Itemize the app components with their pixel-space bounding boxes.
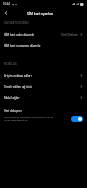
button[interactable]: SİM kart numarası düzenle bbox=[0, 40, 87, 51]
button[interactable]: Veri dolaşımı bbox=[71, 116, 83, 122]
staticText: SİM kart ayarları bbox=[27, 11, 54, 15]
staticText: Mobil ağlar bbox=[4, 96, 20, 100]
staticText: Erişim noktası adları bbox=[4, 74, 32, 78]
staticText: MOBİL AĞ bbox=[4, 62, 17, 66]
button[interactable]: SİM kart adını düzenle bbox=[0, 29, 87, 40]
button[interactable]: Erişim noktası adları bbox=[0, 70, 87, 81]
button[interactable]: Veri dolaşımı bbox=[0, 103, 87, 126]
staticText: SİM kart adını düzenle bbox=[4, 33, 35, 37]
button[interactable]: Tercih edilen ağ türü bbox=[0, 81, 87, 92]
staticText: SİM KARTI DÜZENLE bbox=[4, 21, 30, 25]
staticText: 10:44 bbox=[3, 2, 10, 6]
staticText: Veri dolaşımı hizmetine bağlanmak için e… bbox=[4, 115, 59, 122]
staticText: SİM kart numarası düzenle bbox=[4, 44, 41, 48]
staticText: Türk Telekom bbox=[61, 33, 78, 37]
staticText: Tercih edilen ağ türü bbox=[4, 85, 32, 89]
staticText: Veri dolaşımı bbox=[4, 109, 22, 113]
button[interactable]: Mobil ağlar bbox=[0, 92, 87, 103]
button[interactable]: Geri bbox=[0, 8, 11, 18]
